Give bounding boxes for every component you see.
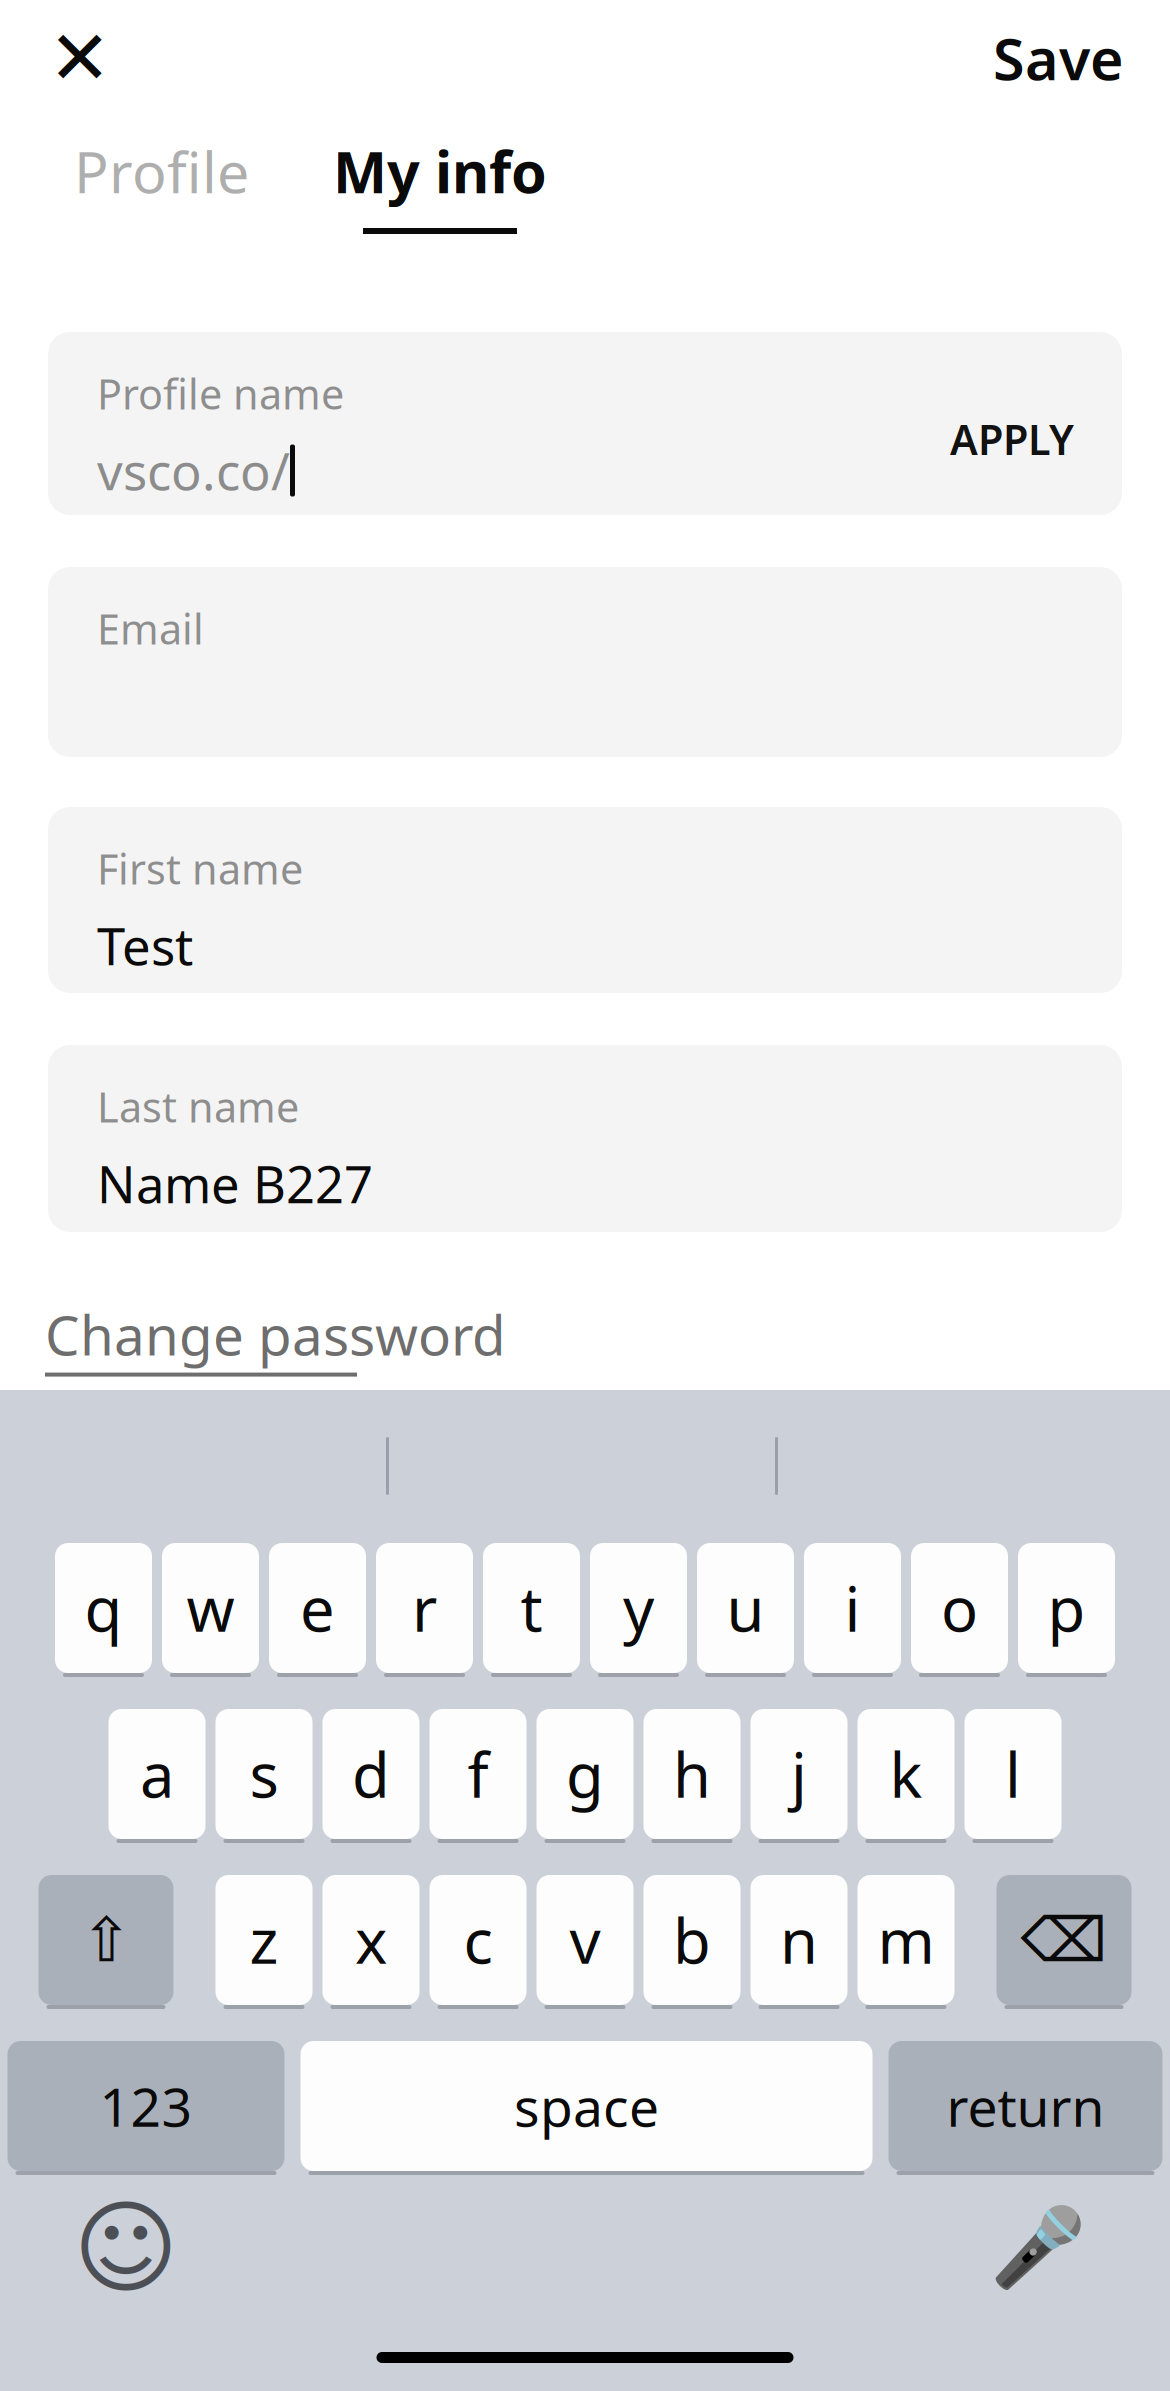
staticText: r xyxy=(412,1567,437,1649)
button[interactable]: t xyxy=(483,1542,580,1678)
button[interactable]: s xyxy=(215,1708,312,1844)
button[interactable]: l xyxy=(964,1708,1061,1844)
button[interactable]: Save xyxy=(953,14,1170,102)
staticText: vsco.co/ xyxy=(97,437,290,504)
button[interactable]: j xyxy=(750,1708,847,1844)
staticText: ✕ xyxy=(48,16,111,100)
staticText: f xyxy=(467,1733,488,1815)
staticText: w xyxy=(186,1567,234,1649)
staticText: y xyxy=(623,1567,654,1649)
button[interactable]: w xyxy=(162,1542,259,1678)
staticText: 123 xyxy=(99,2071,192,2141)
button[interactable]: 123 xyxy=(7,2040,284,2176)
button[interactable]: n xyxy=(750,1874,847,2010)
staticText: Email xyxy=(97,601,204,656)
button[interactable]: b xyxy=(643,1874,740,2010)
staticText: space xyxy=(514,2071,659,2141)
button[interactable]: x xyxy=(322,1874,419,2010)
button[interactable]: Close xyxy=(26,14,134,102)
button[interactable]: d xyxy=(322,1708,419,1844)
staticText: return xyxy=(946,2071,1104,2141)
staticText: Profile name xyxy=(97,366,344,421)
button[interactable]: First name xyxy=(48,807,1122,993)
button[interactable]: g xyxy=(536,1708,633,1844)
button[interactable]: Delete xyxy=(996,1874,1131,2010)
staticText: My info xyxy=(333,133,547,209)
staticText: d xyxy=(352,1733,390,1815)
staticText: t xyxy=(520,1567,542,1649)
staticText: n xyxy=(780,1899,818,1981)
button[interactable]: v xyxy=(536,1874,633,2010)
staticText: b xyxy=(673,1899,711,1981)
staticText: Save xyxy=(993,20,1124,96)
button[interactable]: p xyxy=(1018,1542,1115,1678)
staticText: h xyxy=(673,1733,711,1815)
staticText: a xyxy=(140,1733,174,1815)
button[interactable]: k xyxy=(857,1708,954,1844)
staticText: v xyxy=(569,1899,600,1981)
button[interactable]: Profile xyxy=(46,140,277,234)
staticText: ⌫ xyxy=(1020,1905,1107,1975)
button[interactable]: Dictation xyxy=(998,2202,1078,2294)
staticText: x xyxy=(355,1899,387,1981)
button[interactable]: Change password xyxy=(0,1298,1170,1377)
staticText: Test xyxy=(97,912,193,979)
button[interactable]: a xyxy=(108,1708,205,1844)
button[interactable]: z xyxy=(215,1874,312,2010)
button[interactable]: f xyxy=(429,1708,526,1844)
button[interactable]: return xyxy=(888,2040,1162,2176)
staticText: g xyxy=(566,1733,604,1815)
button[interactable]: space xyxy=(300,2040,872,2176)
button[interactable]: Emoji keyboard xyxy=(80,2202,172,2294)
staticText: 🎤 xyxy=(990,2204,1086,2292)
staticText: u xyxy=(726,1567,764,1649)
staticText: Last name xyxy=(97,1079,299,1134)
staticText: i xyxy=(844,1567,860,1649)
staticText: ⇧ xyxy=(80,1905,131,1975)
button[interactable]: i xyxy=(804,1542,901,1678)
staticText: q xyxy=(84,1567,122,1649)
staticText: z xyxy=(249,1899,278,1981)
button[interactable]: y xyxy=(590,1542,687,1678)
staticText: j xyxy=(791,1733,807,1815)
staticText: APPLY xyxy=(950,412,1074,466)
staticText: l xyxy=(1005,1733,1021,1815)
button[interactable]: q xyxy=(55,1542,152,1678)
staticText: s xyxy=(249,1733,278,1815)
staticText: c xyxy=(463,1899,492,1981)
button[interactable]: e xyxy=(269,1542,366,1678)
staticText: k xyxy=(889,1733,922,1815)
button[interactable]: u xyxy=(697,1542,794,1678)
button[interactable]: Last name xyxy=(48,1045,1122,1232)
staticText: p xyxy=(1047,1567,1085,1649)
button[interactable]: r xyxy=(376,1542,473,1678)
button[interactable]: m xyxy=(857,1874,954,2010)
staticText: ☺ xyxy=(73,2190,179,2305)
staticText: Change password xyxy=(45,1298,506,1371)
button[interactable]: Profile name xyxy=(48,332,1122,515)
staticText: Profile xyxy=(74,133,249,209)
button[interactable]: o xyxy=(911,1542,1008,1678)
staticText: Name B227 xyxy=(97,1150,373,1217)
staticText: e xyxy=(300,1567,335,1649)
staticText: First name xyxy=(97,841,303,896)
staticText: o xyxy=(941,1567,978,1649)
staticText: m xyxy=(877,1899,934,1981)
button[interactable]: h xyxy=(643,1708,740,1844)
button[interactable]: Email xyxy=(48,567,1122,757)
button[interactable]: c xyxy=(429,1874,526,2010)
button[interactable]: My info xyxy=(333,140,547,234)
button[interactable]: Shift xyxy=(38,1874,173,2010)
